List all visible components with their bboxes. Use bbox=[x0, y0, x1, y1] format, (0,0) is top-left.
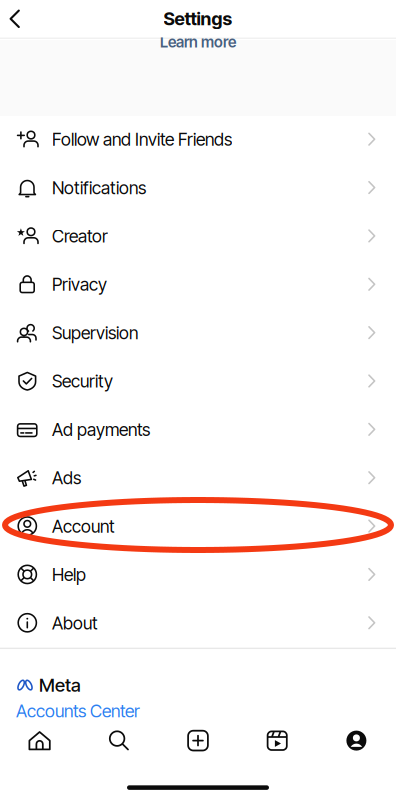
staticText: Learn more bbox=[160, 33, 236, 51]
staticText: Creator bbox=[52, 225, 108, 247]
button[interactable]: Account bbox=[0, 502, 396, 550]
staticText: Meta bbox=[39, 674, 81, 696]
button[interactable]: Profile bbox=[317, 718, 396, 764]
staticText: Follow and Invite Friends bbox=[52, 129, 232, 150]
staticText: Notifications bbox=[52, 177, 146, 198]
button[interactable]: Ads bbox=[0, 454, 396, 502]
button[interactable]: Creator bbox=[0, 212, 396, 260]
staticText: Settings bbox=[163, 8, 232, 30]
staticText: Supervision bbox=[52, 322, 138, 343]
staticText: Account bbox=[52, 516, 115, 537]
staticText: Accounts Center bbox=[16, 700, 140, 722]
staticText: Help bbox=[52, 564, 86, 585]
button[interactable]: Reels bbox=[238, 718, 317, 764]
staticText: Ad payments bbox=[52, 419, 150, 440]
button[interactable]: Home bbox=[0, 718, 79, 764]
button[interactable]: Ad payments bbox=[0, 405, 396, 454]
staticText: About bbox=[52, 612, 98, 634]
button[interactable]: Back bbox=[0, 0, 54, 37]
staticText: Security bbox=[52, 370, 113, 392]
staticText: Privacy bbox=[52, 274, 107, 295]
button[interactable]: Notifications bbox=[0, 164, 396, 212]
button[interactable]: Follow and Invite Friends bbox=[0, 115, 396, 164]
button[interactable]: About bbox=[0, 599, 396, 647]
button[interactable]: Search bbox=[79, 718, 158, 764]
button[interactable]: Privacy bbox=[0, 260, 396, 309]
button[interactable]: Learn more bbox=[0, 35, 396, 49]
button[interactable]: Help bbox=[0, 550, 396, 599]
button[interactable]: Security bbox=[0, 357, 396, 405]
button[interactable]: Create bbox=[158, 718, 238, 764]
button[interactable]: Accounts Center bbox=[16, 703, 140, 719]
staticText: Ads bbox=[52, 467, 81, 489]
button[interactable]: Supervision bbox=[0, 309, 396, 357]
